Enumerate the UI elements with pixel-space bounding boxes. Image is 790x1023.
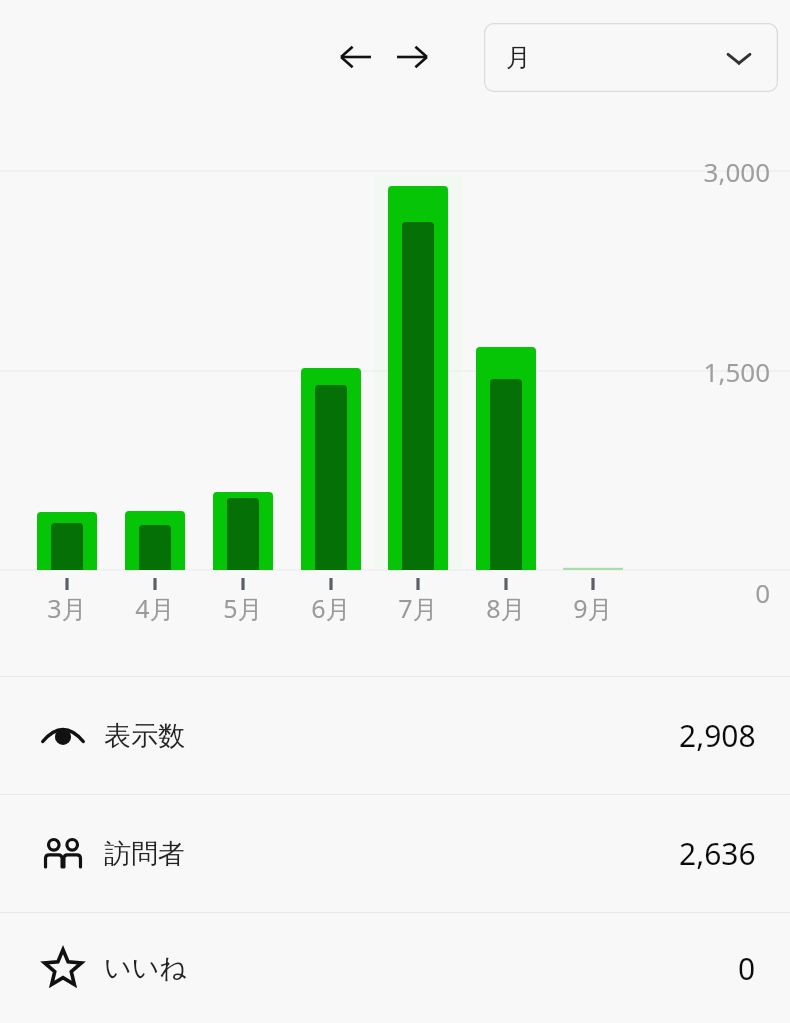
staticText: 5月	[203, 591, 283, 625]
button[interactable]: 訪問者	[0, 795, 790, 912]
staticText: 1,500	[570, 354, 770, 389]
staticText: 3,000	[570, 154, 770, 189]
staticText: 月	[506, 42, 531, 73]
staticText: 7月	[378, 591, 458, 625]
staticText: 2,636	[679, 833, 756, 874]
button[interactable]: 表示数	[0, 677, 790, 794]
staticText: 4月	[115, 591, 195, 625]
staticText: 訪問者	[104, 837, 185, 871]
staticText: 8月	[466, 591, 546, 625]
staticText: 3月	[27, 591, 107, 625]
button[interactable]: Next period	[386, 31, 438, 83]
staticText: 2,908	[679, 715, 756, 756]
staticText: 6月	[291, 591, 371, 625]
staticText: いいね	[104, 951, 187, 985]
button[interactable]: 月	[484, 23, 778, 92]
button[interactable]: いいね	[0, 913, 790, 1023]
staticText: 0	[570, 575, 770, 610]
staticText: 9月	[553, 591, 633, 625]
button[interactable]: Previous period	[330, 31, 382, 83]
staticText: 表示数	[104, 719, 185, 753]
staticText: 0	[738, 948, 756, 989]
